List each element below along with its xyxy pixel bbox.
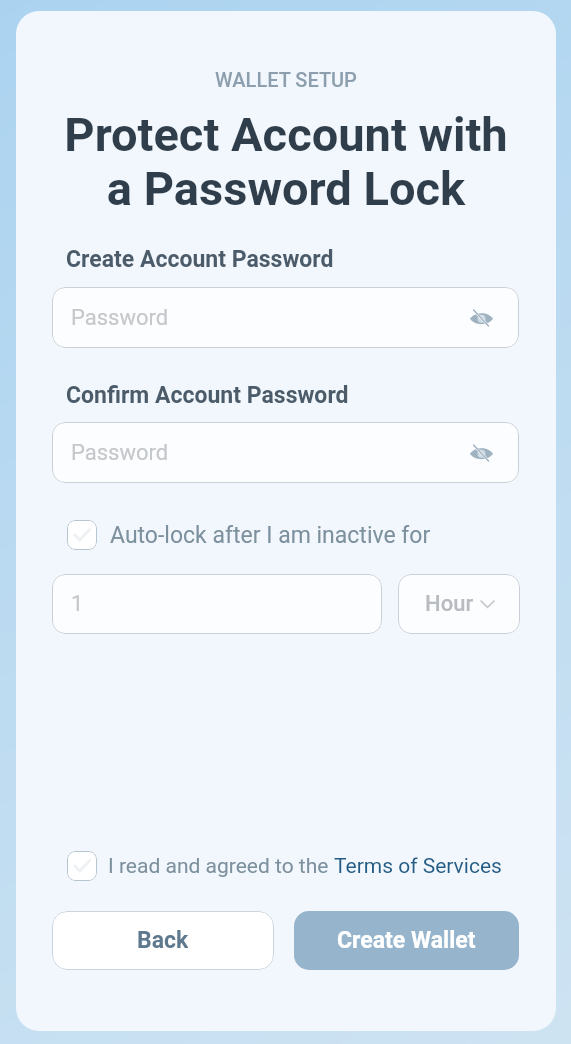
staticText: Create Account Password (66, 246, 334, 273)
button[interactable]: Show password (464, 301, 498, 335)
button[interactable]: Back (52, 911, 274, 970)
button[interactable]: Password (52, 422, 519, 483)
button[interactable]: Password (52, 287, 519, 348)
staticText: Hour (425, 591, 474, 617)
button[interactable]: Hour (398, 574, 520, 634)
button[interactable]: Auto-lock after I am inactive for (51, 504, 447, 566)
staticText: Terms of Services (334, 854, 502, 879)
button[interactable]: I read and agreed to the (51, 835, 518, 897)
staticText: Confirm Account Password (66, 382, 349, 409)
staticText: WALLET SETUP (16, 68, 556, 91)
staticText: I read and agreed to the (108, 854, 334, 879)
button[interactable]: Create Wallet (294, 911, 519, 970)
staticText: Password (71, 305, 169, 331)
staticText: 1 (71, 591, 84, 617)
staticText: Auto-lock after I am inactive for (110, 522, 431, 549)
button[interactable]: 1 (52, 574, 382, 634)
staticText: Back (137, 927, 189, 954)
staticText: Protect Account with a Password Lock (16, 107, 556, 216)
button[interactable]: Show password (464, 436, 498, 470)
staticText: Create Wallet (337, 927, 476, 954)
staticText: Password (71, 440, 169, 466)
